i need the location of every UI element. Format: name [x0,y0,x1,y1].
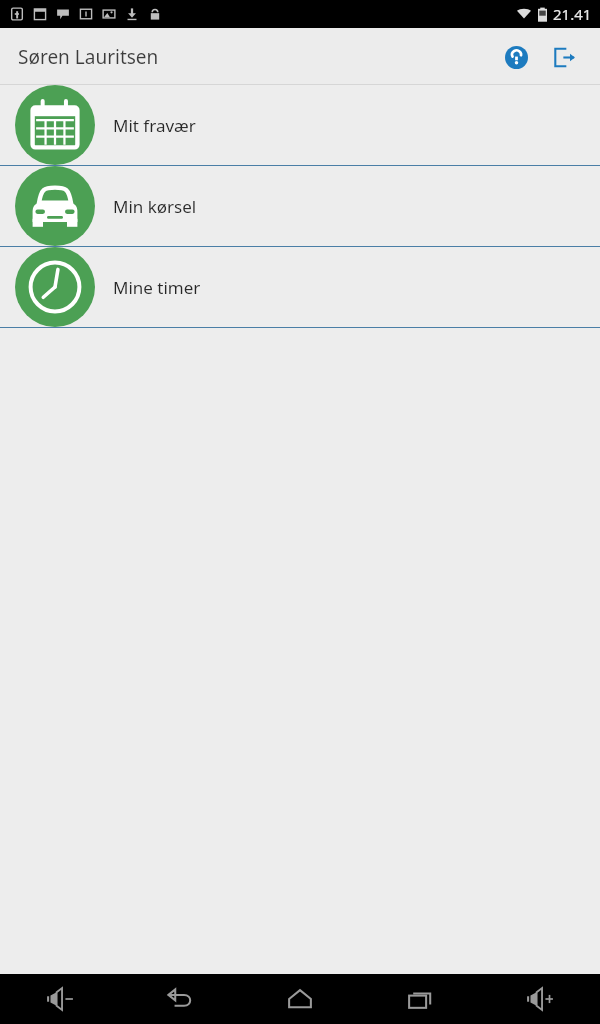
button[interactable]: Volume up [480,974,600,1024]
button[interactable]: Min kørsel [0,166,600,246]
button[interactable]: Help [494,35,538,79]
button[interactable]: Volume down [0,974,120,1024]
button[interactable]: Mine timer [0,247,600,327]
staticText: Søren Lauritsen [18,44,159,70]
staticText: Mine timer [113,276,201,299]
staticText: Mit fravær [113,114,196,137]
staticText: Min kørsel [113,195,197,218]
button[interactable]: Home [240,974,360,1024]
button[interactable]: Mit fravær [0,85,600,165]
staticText: 21.41 [553,4,592,24]
button[interactable]: Back [120,974,240,1024]
button[interactable]: Log out [542,35,586,79]
button[interactable]: Recents [360,974,480,1024]
